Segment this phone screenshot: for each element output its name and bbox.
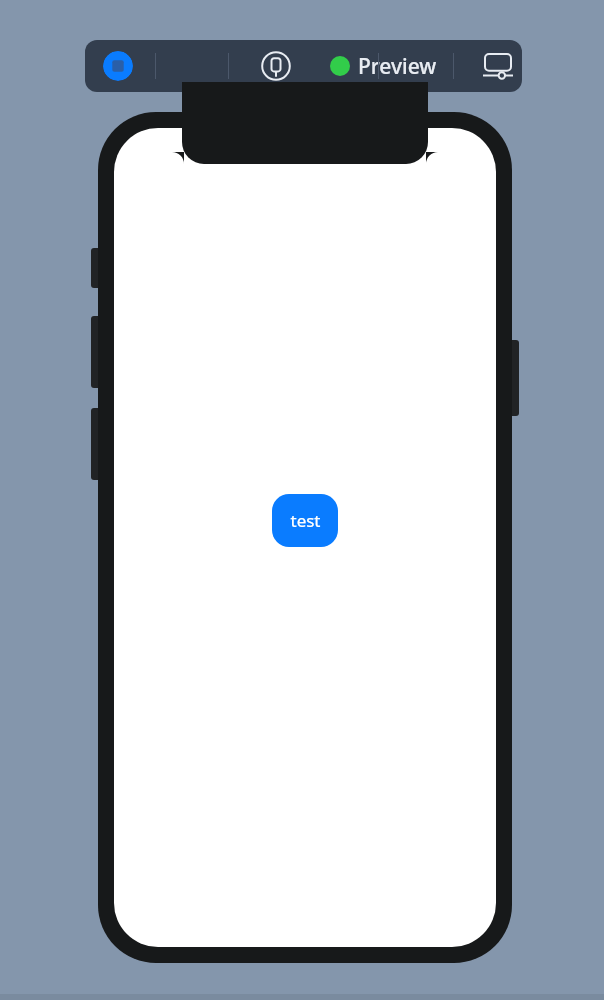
button[interactable]: Stop preview: [103, 51, 133, 81]
staticText: Preview: [358, 52, 437, 81]
staticText: test: [290, 509, 321, 532]
button[interactable]: test: [272, 494, 338, 547]
button[interactable]: Preview: [325, 49, 453, 83]
button[interactable]: Select device: [258, 48, 294, 84]
button[interactable]: Resize preview: [478, 48, 518, 84]
